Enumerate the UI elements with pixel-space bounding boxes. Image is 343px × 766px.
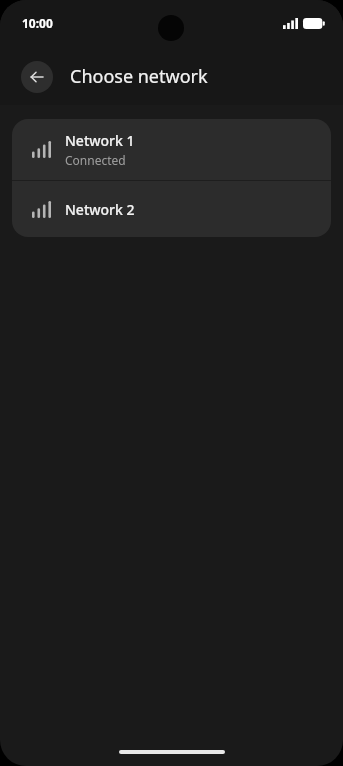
button[interactable]: Network 2 <box>12 181 331 237</box>
staticText: Network 1 <box>65 131 135 150</box>
staticText: Choose network <box>70 64 208 89</box>
button[interactable]: Back <box>21 61 53 93</box>
staticText: 10:00 <box>22 15 53 31</box>
button[interactable]: Network 1 <box>12 119 331 180</box>
staticText: Connected <box>65 152 126 168</box>
staticText: Network 2 <box>65 200 135 219</box>
